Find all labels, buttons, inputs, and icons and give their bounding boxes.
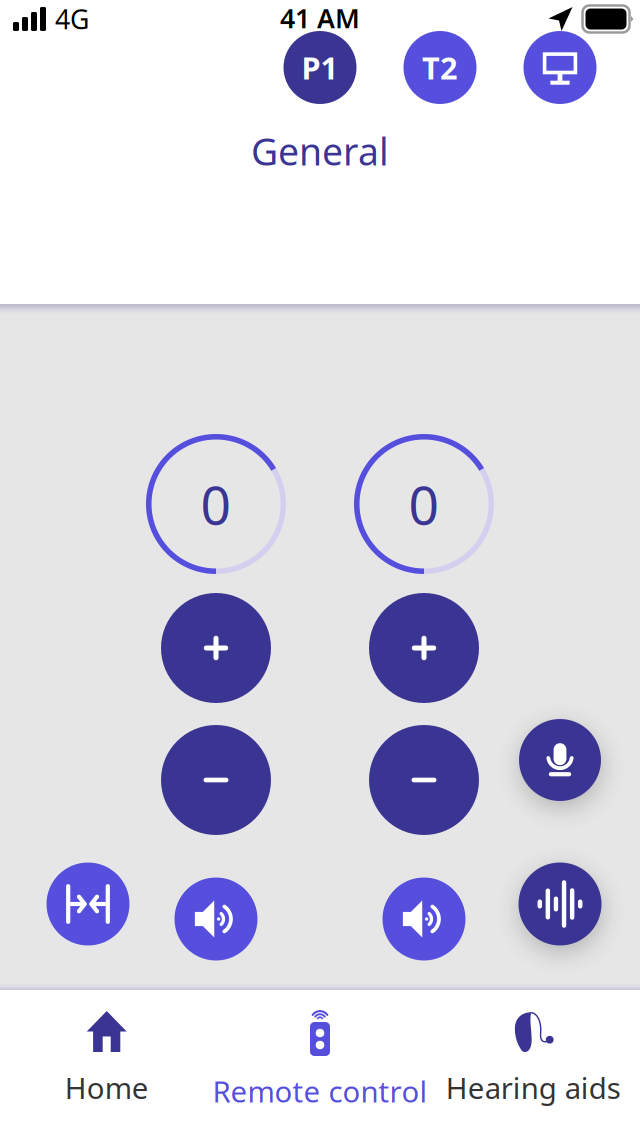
button[interactable]: Volume down left: [161, 725, 271, 835]
button[interactable]: Volume up right: [369, 593, 479, 703]
button[interactable]: Balance: [46, 862, 129, 945]
button[interactable]: P1: [283, 31, 356, 104]
staticText: Home: [65, 1068, 149, 1107]
staticText: 41 AM: [280, 0, 360, 36]
staticText: Remote control: [212, 1071, 427, 1110]
button[interactable]: Microphone: [519, 719, 601, 801]
staticText: P1: [301, 47, 338, 88]
button[interactable]: Hearing aids: [403, 986, 640, 1132]
button[interactable]: T2: [403, 31, 476, 104]
staticText: General: [251, 126, 389, 176]
staticText: 4G: [55, 1, 89, 37]
button[interactable]: Left speaker: [174, 877, 257, 960]
button[interactable]: Home: [0, 986, 237, 1132]
staticText: 0: [408, 469, 439, 539]
staticText: Hearing aids: [446, 1068, 621, 1107]
button[interactable]: TV streamer: [523, 31, 596, 104]
staticText: 0: [200, 469, 231, 539]
button[interactable]: Volume up left: [161, 593, 271, 703]
button[interactable]: Sound equalizer: [518, 862, 601, 945]
button[interactable]: Volume down right: [369, 725, 479, 835]
staticText: T2: [422, 47, 458, 88]
button[interactable]: Right speaker: [382, 877, 465, 960]
button[interactable]: Remote control: [190, 986, 450, 1132]
